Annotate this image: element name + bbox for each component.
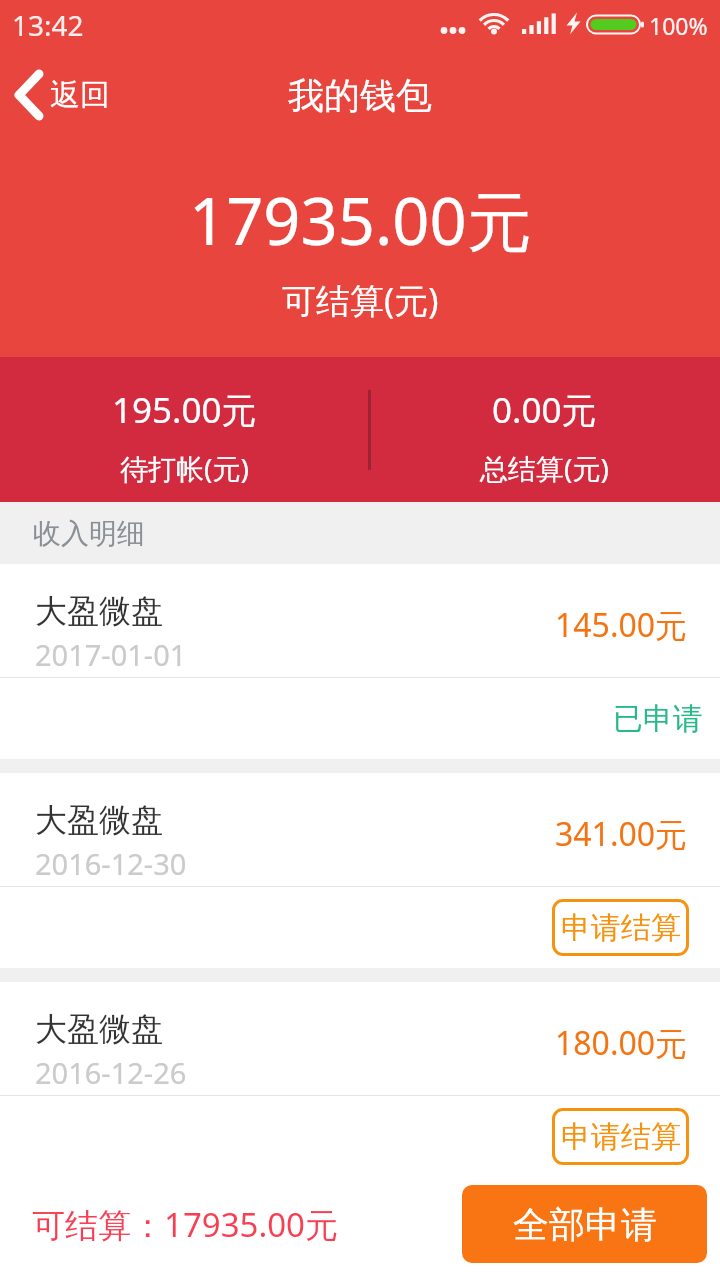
- staticText: 待打帐(元): [120, 449, 249, 487]
- staticText: 大盈微盘: [35, 1009, 163, 1049]
- staticText: 2017-01-01: [35, 635, 187, 674]
- staticText: 13:42: [12, 6, 84, 44]
- staticText: 195.00元: [112, 386, 257, 434]
- staticText: 总结算(元): [480, 449, 609, 487]
- staticText: 大盈微盘: [35, 591, 163, 631]
- staticText: 申请结算: [561, 1118, 681, 1156]
- staticText: 180.00元: [555, 1021, 688, 1065]
- staticText: 收入明细: [33, 516, 145, 551]
- staticText: 可结算(元): [282, 277, 439, 323]
- staticText: 我的钱包: [288, 73, 432, 118]
- staticText: 17935.00元: [189, 176, 532, 265]
- staticText: 0.00元: [492, 386, 597, 434]
- staticText: 大盈微盘: [35, 800, 163, 840]
- staticText: 100%: [649, 10, 708, 41]
- staticText: 返回: [50, 76, 110, 114]
- staticText: 145.00元: [555, 603, 688, 647]
- staticText: 2016-12-30: [35, 844, 187, 883]
- staticText: 申请结算: [561, 909, 681, 947]
- staticText: 341.00元: [555, 812, 688, 856]
- staticText: 已申请: [613, 700, 703, 738]
- staticText: 可结算：17935.00元: [32, 1202, 338, 1247]
- staticText: 全部申请: [513, 1202, 657, 1247]
- staticText: 2016-12-26: [35, 1053, 187, 1092]
